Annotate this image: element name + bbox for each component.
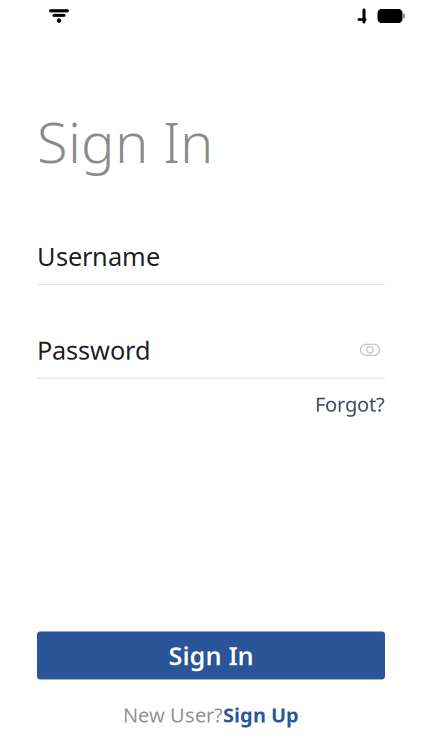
staticText: Password bbox=[37, 333, 151, 367]
staticText: Forgot? bbox=[315, 391, 385, 417]
staticText: Sign In bbox=[37, 104, 213, 178]
staticText: Username bbox=[37, 239, 160, 273]
staticText: Sign Up bbox=[223, 701, 299, 728]
button[interactable]: Forgot? bbox=[315, 391, 385, 417]
button[interactable]: Sign In bbox=[37, 631, 385, 679]
staticText: Sign In bbox=[168, 639, 253, 672]
button[interactable]: Show password bbox=[355, 337, 385, 363]
button[interactable]: New User? bbox=[123, 701, 299, 728]
staticText: New User? bbox=[123, 701, 223, 728]
